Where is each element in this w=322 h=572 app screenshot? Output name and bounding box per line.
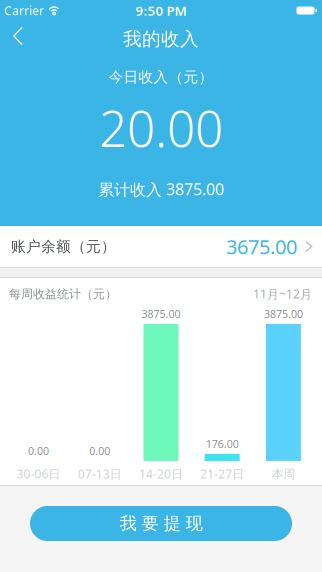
staticText: 3675.00 [226,233,297,260]
staticText: 14-20日 [139,466,183,482]
staticText: 0.00 [89,444,110,458]
staticText: 账户余额（元） [11,237,116,255]
staticText: 3875.00 [264,307,303,321]
button[interactable]: Back [0,23,23,54]
staticText: 每周收益统计（元） [9,287,117,301]
staticText: 11月~12月 [253,286,312,302]
staticText: Carrier [4,2,44,18]
button[interactable]: 我 要 提 现 [30,506,292,541]
staticText: 176.00 [206,437,239,451]
staticText: 21-27日 [200,466,244,482]
staticText: 0.00 [28,444,49,458]
staticText: 3875.00 [141,307,180,321]
staticText: 30-06日 [17,466,61,482]
button[interactable]: 账户余额（元） [0,226,322,267]
staticText: 累计收入 3875.00 [98,178,224,200]
staticText: 本周 [271,466,295,481]
staticText: 今日收入（元） [108,68,213,86]
staticText: 我的收入 [123,27,199,50]
staticText: 07-13日 [78,466,122,482]
staticText: 9:50 PM [135,2,186,19]
staticText: 20.00 [99,95,223,160]
staticText: 我 要 提 现 [119,513,202,534]
